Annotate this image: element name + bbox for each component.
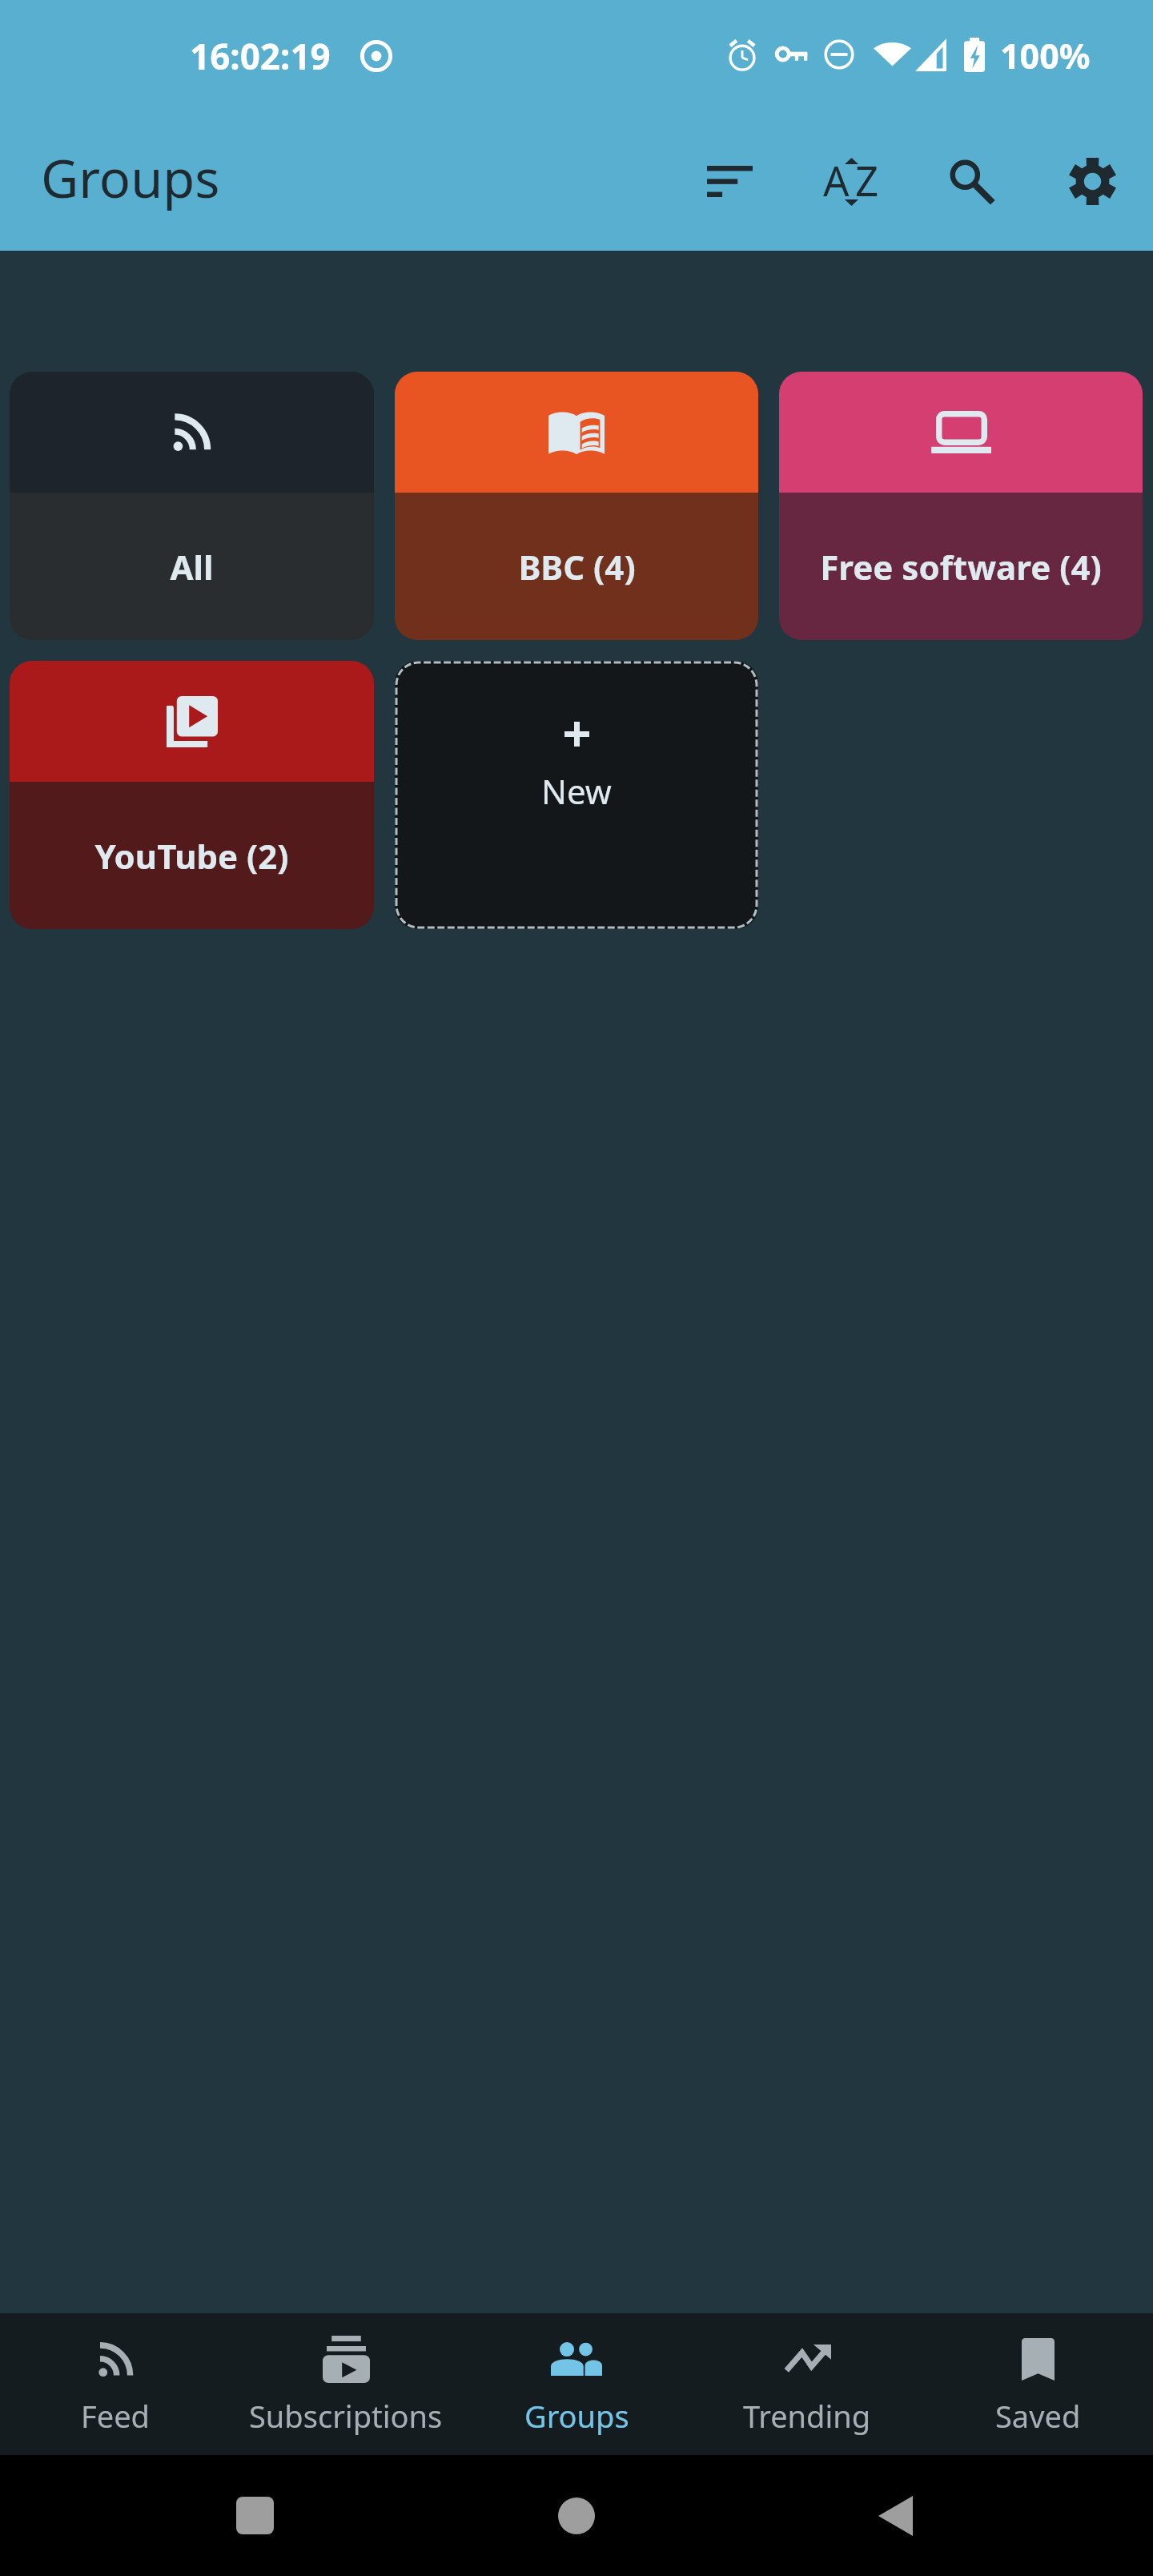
button[interactable]: BBC (4): [395, 372, 758, 640]
button[interactable]: Search: [911, 121, 1032, 242]
button[interactable]: Subscriptions: [231, 2313, 461, 2455]
staticText: Z: [855, 152, 879, 207]
button[interactable]: Free software (4): [779, 372, 1143, 640]
staticText: New: [541, 768, 612, 814]
button[interactable]: Sort: [669, 121, 790, 242]
staticText: Free software (4): [820, 544, 1102, 590]
button[interactable]: YouTube (2): [10, 661, 374, 929]
staticText: A: [823, 152, 850, 207]
button[interactable]: Sort alphabetically: [790, 121, 911, 242]
staticText: 100%: [1000, 32, 1091, 79]
button[interactable]: All: [10, 372, 374, 640]
button[interactable]: Recent apps: [178, 2455, 331, 2576]
staticText: BBC (4): [518, 544, 636, 590]
staticText: YouTube (2): [94, 833, 289, 879]
staticText: Subscriptions: [249, 2395, 443, 2437]
button[interactable]: Settings: [1032, 121, 1153, 242]
button[interactable]: Feed: [0, 2313, 231, 2455]
button[interactable]: Home: [500, 2455, 653, 2576]
staticText: Feed: [81, 2395, 150, 2437]
button[interactable]: Groups: [461, 2313, 692, 2455]
button[interactable]: New: [395, 661, 758, 929]
staticText: 16:02:19: [190, 32, 331, 80]
staticText: All: [170, 544, 214, 590]
staticText: Saved: [995, 2395, 1081, 2437]
button[interactable]: Saved: [922, 2313, 1153, 2455]
staticText: Groups: [41, 143, 220, 214]
staticText: Trending: [743, 2395, 871, 2437]
button[interactable]: Back: [818, 2455, 972, 2576]
button[interactable]: Trending: [692, 2313, 922, 2455]
staticText: Groups: [524, 2395, 629, 2437]
